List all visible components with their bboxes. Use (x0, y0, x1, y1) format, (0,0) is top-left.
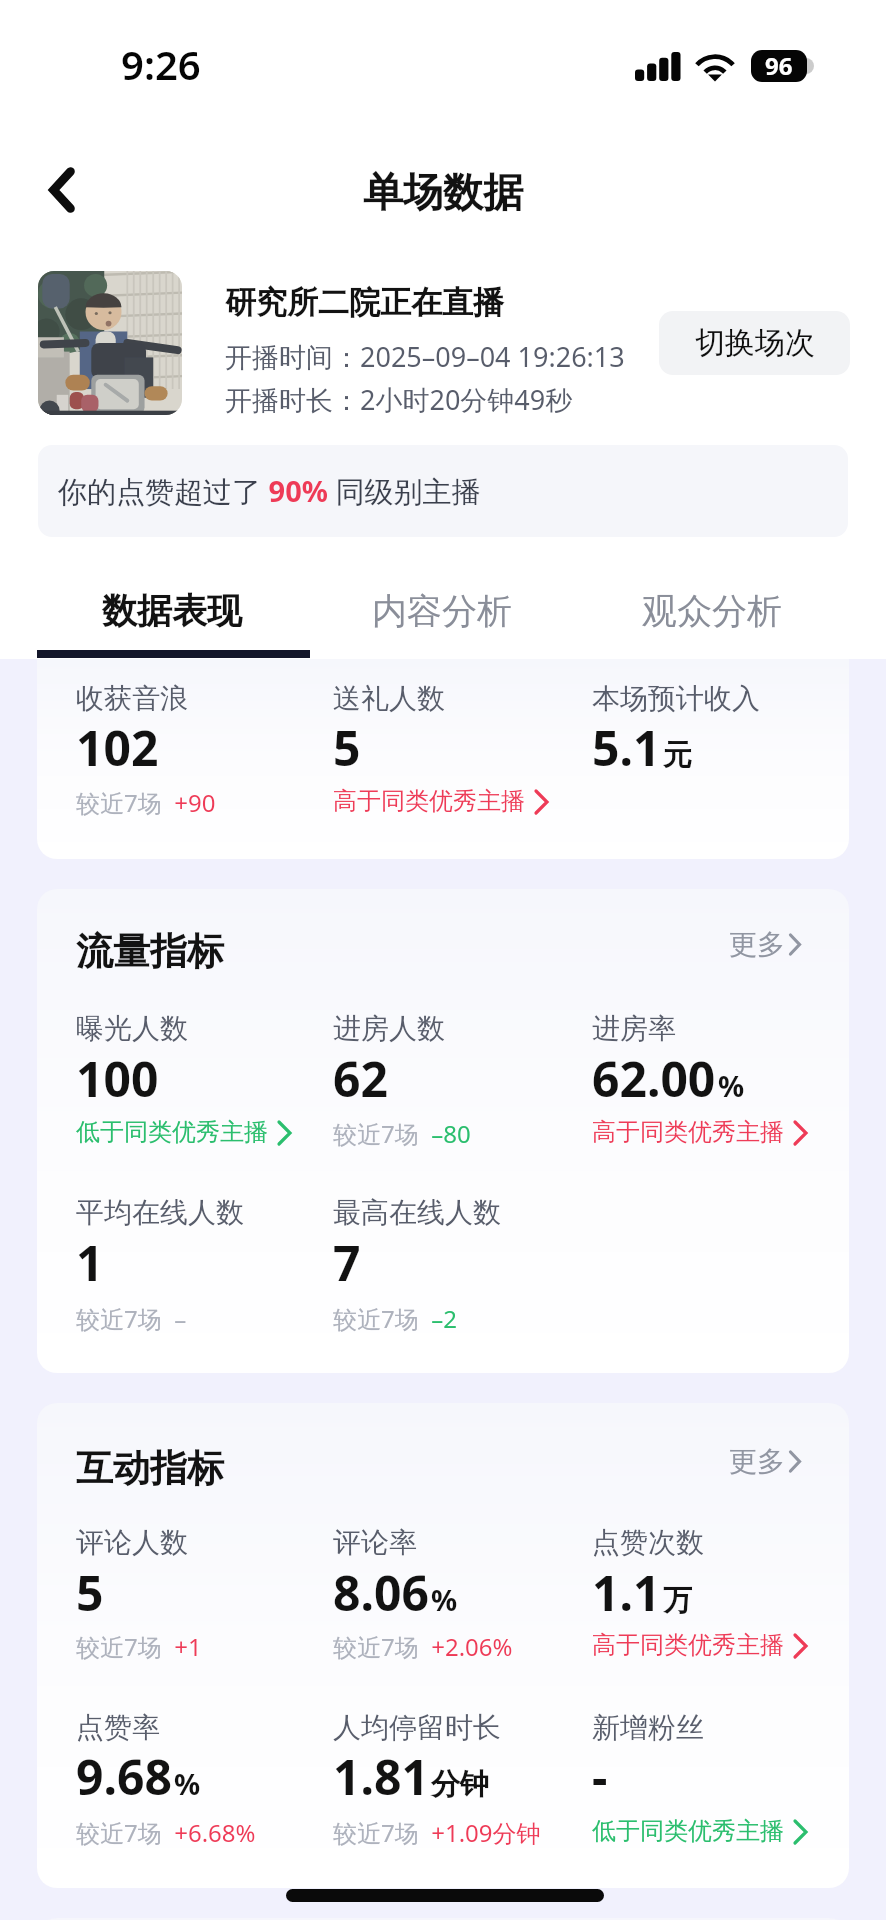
button[interactable]: 高于同类优秀主播 (333, 786, 549, 816)
staticText: 较近7场 +1 (76, 1630, 202, 1663)
staticText: 高于同类优秀主播 (592, 1630, 784, 1660)
staticText: 评论人数 (76, 1525, 188, 1560)
staticText: 62 (333, 1046, 388, 1111)
staticText: 较近7场 –2 (333, 1302, 457, 1335)
staticText: 元 (663, 737, 692, 774)
staticText: - (592, 1744, 608, 1809)
button[interactable]: 你的点赞超过了 90% 同级别主播 (38, 445, 848, 537)
staticText: 分钟 (431, 1766, 489, 1803)
staticText: 平均在线人数 (76, 1195, 244, 1230)
staticText: 人均停留时长 (333, 1710, 501, 1745)
staticText: % (174, 1764, 201, 1803)
staticText: 进房率 (592, 1011, 676, 1046)
staticText: 低于同类优秀主播 (76, 1117, 268, 1147)
staticText: 1.81 (333, 1744, 429, 1809)
staticText: 更多 (729, 1444, 785, 1479)
staticText: % (718, 1066, 745, 1105)
button[interactable] (37, 889, 849, 1373)
staticText: 5.1 (592, 715, 661, 780)
button[interactable]: Back (26, 160, 98, 220)
staticText: 开播时间：2025–09–04 19:26:13 (225, 338, 625, 375)
button[interactable]: 高于同类优秀主播 (592, 1117, 808, 1147)
staticText: 1 (76, 1230, 104, 1295)
staticText: 8.06 (333, 1560, 429, 1625)
staticText: 曝光人数 (76, 1011, 188, 1046)
staticText: 收获音浪 (76, 681, 188, 716)
staticText: 较近7场 +90 (76, 786, 216, 819)
button[interactable]: 观众分析 (577, 570, 847, 659)
staticText: 最高在线人数 (333, 1195, 501, 1230)
staticText: 7 (333, 1230, 361, 1295)
staticText: % (431, 1580, 458, 1619)
staticText: 5 (333, 715, 361, 780)
staticText: 内容分析 (372, 589, 512, 633)
staticText: 5 (76, 1560, 104, 1625)
staticText: 进房人数 (333, 1011, 445, 1046)
staticText: 较近7场 +1.09分钟 (333, 1816, 541, 1849)
staticText: 高于同类优秀主播 (592, 1117, 784, 1147)
button[interactable]: 低于同类优秀主播 (592, 1816, 808, 1846)
staticText: 更多 (729, 927, 785, 962)
staticText: 开播时长：2小时20分钟49秒 (225, 381, 573, 418)
button[interactable] (37, 659, 849, 859)
staticText: 较近7场 – (76, 1302, 187, 1335)
staticText: 9:26 (121, 37, 201, 91)
button[interactable]: 低于同类优秀主播 (76, 1117, 292, 1147)
button[interactable]: 高于同类优秀主播 (592, 1630, 808, 1660)
staticText: 62.00 (592, 1046, 716, 1111)
button[interactable]: Streamer avatar (38, 271, 182, 415)
staticText: 你的点赞超过了 90% 同级别主播 (58, 471, 481, 511)
staticText: 单场数据 (363, 167, 523, 217)
staticText: 100 (76, 1046, 159, 1111)
button[interactable] (37, 1403, 849, 1888)
staticText: 流量指标 (76, 928, 224, 975)
staticText: 新增粉丝 (592, 1710, 704, 1745)
staticText: 较近7场 –80 (333, 1117, 471, 1150)
button[interactable]: 数据表现 (37, 570, 307, 659)
staticText: 较近7场 +2.06% (333, 1630, 513, 1663)
staticText: 本场预计收入 (592, 681, 760, 716)
staticText: 送礼人数 (333, 681, 445, 716)
staticText: 切换场次 (695, 324, 815, 362)
staticText: 96 (765, 50, 793, 81)
button[interactable]: 内容分析 (307, 570, 577, 659)
staticText: 低于同类优秀主播 (592, 1816, 784, 1846)
staticText: 数据表现 (102, 589, 242, 633)
staticText: 观众分析 (642, 589, 782, 633)
staticText: 高于同类优秀主播 (333, 786, 525, 816)
staticText: 较近7场 +6.68% (76, 1816, 256, 1849)
staticText: 研究所二院正在直播 (225, 283, 504, 322)
staticText: 互动指标 (76, 1445, 224, 1492)
button[interactable]: 更多 (729, 1444, 802, 1479)
button[interactable]: 切换场次 (659, 311, 850, 375)
staticText: 1.1 (592, 1560, 661, 1625)
staticText: 点赞率 (76, 1710, 160, 1745)
staticText: 评论率 (333, 1525, 417, 1560)
button[interactable]: 更多 (729, 927, 802, 962)
staticText: 9.68 (76, 1744, 172, 1809)
staticText: 102 (76, 715, 159, 780)
staticText: 万 (663, 1582, 692, 1619)
staticText: 点赞次数 (592, 1525, 704, 1560)
